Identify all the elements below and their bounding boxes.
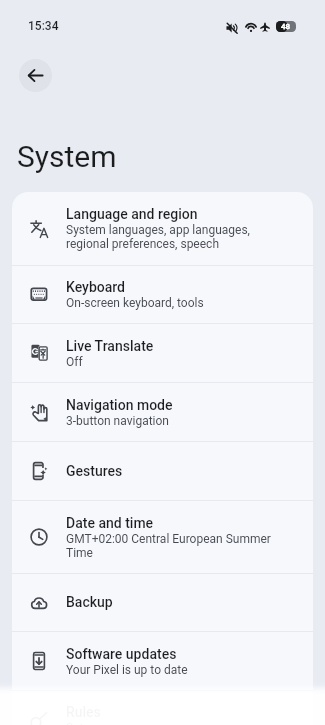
staticText: System languages, app languages, regiona…	[66, 223, 250, 251]
staticText: Backup	[66, 594, 113, 611]
staticText: Off	[66, 355, 83, 369]
staticText: 15:34	[28, 19, 59, 33]
button[interactable]: Keyboard	[12, 266, 313, 323]
staticText: Language and region	[66, 206, 198, 223]
button[interactable]: Live Translate	[12, 324, 313, 382]
staticText: 48	[281, 22, 291, 31]
button[interactable]: Navigation mode	[12, 383, 313, 441]
staticText: Live Translate	[66, 338, 154, 355]
staticText: 3-button navigation	[66, 414, 169, 428]
button[interactable]: Software updates	[12, 632, 313, 690]
staticText: Rules	[66, 704, 101, 721]
staticText: GMT+02:00 Central European Summer Time	[66, 532, 271, 560]
staticText: Keyboard	[66, 279, 126, 296]
staticText: Your Pixel is up to date	[66, 663, 188, 677]
button[interactable]: Language and region	[12, 192, 313, 265]
button[interactable]: Date and time	[12, 501, 313, 573]
staticText: Software updates	[66, 646, 177, 663]
button[interactable]: Back	[19, 59, 52, 92]
button[interactable]: Gestures	[12, 442, 313, 500]
staticText: Navigation mode	[66, 397, 173, 414]
staticText: Date and time	[66, 515, 154, 532]
staticText: On-screen keyboard, tools	[66, 296, 204, 310]
button[interactable]: Backup	[12, 574, 313, 631]
staticText: Gestures	[66, 463, 123, 480]
staticText: System	[17, 139, 117, 174]
